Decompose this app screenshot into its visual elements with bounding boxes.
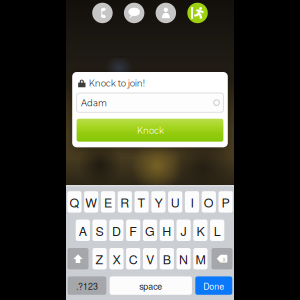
button[interactable]: Delete [211,248,232,269]
button[interactable]: Shift [67,248,88,269]
button[interactable]: People [156,3,176,23]
staticText: E [104,193,112,211]
staticText: Knock to join! [89,78,145,89]
staticText: O [204,193,214,211]
button[interactable]: Z [92,248,107,269]
staticText: U [171,193,180,211]
button[interactable]: Q [67,191,81,213]
staticText: M [195,250,205,268]
button[interactable]: N [176,248,191,269]
staticText: C [129,250,138,268]
staticText: R [120,193,129,211]
staticText: N [179,250,188,268]
staticText: T [138,193,146,211]
button[interactable]: U [168,191,182,213]
button[interactable]: B [160,248,174,269]
button[interactable]: A [76,220,90,241]
button[interactable]: D [109,220,123,241]
staticText: K [196,222,204,239]
button[interactable]: O [202,191,216,213]
button[interactable]: T [134,191,149,213]
button[interactable]: H [160,220,174,241]
button[interactable]: X [109,248,123,269]
button[interactable]: Messages [124,3,144,23]
staticText: Z [96,250,104,268]
staticText: F [129,222,137,239]
button[interactable]: Call [92,3,113,23]
button[interactable]: space [110,276,192,295]
button[interactable]: Y [151,191,165,213]
button[interactable]: Knock [77,119,223,142]
staticText: Knock [137,126,164,136]
button[interactable]: I [185,191,199,213]
staticText: P [222,193,230,211]
button[interactable]: F [126,220,140,241]
button[interactable]: .?123 [68,276,106,295]
staticText: space [139,280,162,292]
staticText: Y [154,193,162,211]
staticText: W [85,193,97,211]
staticText: .?123 [76,280,98,292]
staticText: H [162,222,171,239]
button[interactable]: P [218,191,233,213]
button[interactable]: V [143,248,157,269]
button[interactable]: J [176,220,191,241]
staticText: Done [203,280,224,292]
staticText: A [79,222,87,239]
button[interactable]: R [118,191,132,213]
staticText: x [222,254,225,263]
staticText: G [145,222,155,239]
button[interactable]: S [92,220,107,241]
button[interactable]: C [126,248,140,269]
button[interactable]: K [193,220,207,241]
button[interactable]: E [101,191,115,213]
staticText: D [112,222,121,239]
staticText: S [96,222,104,239]
staticText: L [214,222,221,239]
button[interactable]: G [143,220,157,241]
button[interactable]: W [84,191,98,213]
staticText: Q [69,193,79,211]
staticText: X [112,250,120,268]
button[interactable]: L [210,220,224,241]
staticText: B [163,250,171,268]
button[interactable]: M [193,248,207,269]
staticText: V [146,250,154,268]
button[interactable]: Join [187,3,208,23]
staticText: J [181,222,187,239]
staticText: I [190,193,193,211]
button[interactable]: Done [195,276,232,295]
staticText: Adam [81,98,107,108]
